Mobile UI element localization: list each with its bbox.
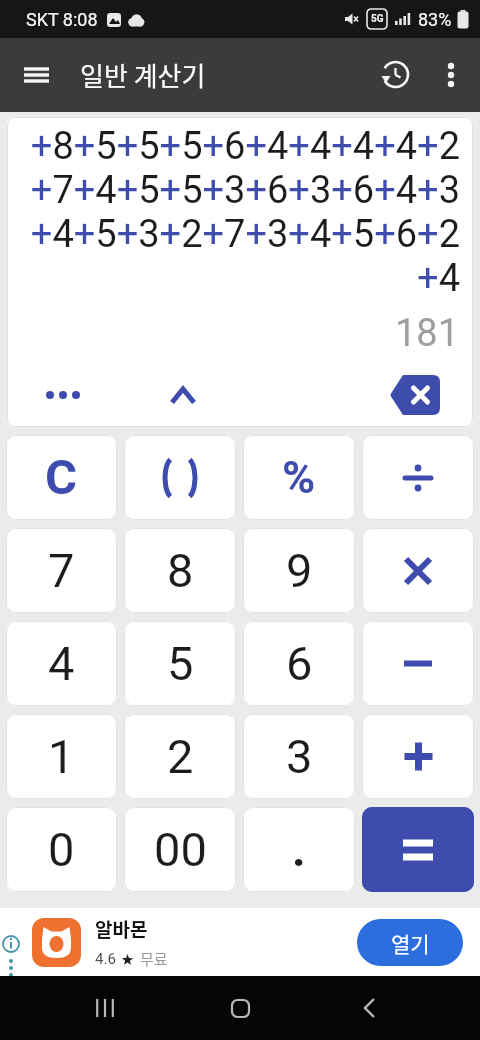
button[interactable] [39, 375, 87, 415]
staticText: 8 [167, 543, 194, 598]
staticText: +7+4+5+5+3+6+3+6+4+3 [30, 168, 460, 212]
button[interactable] [390, 375, 440, 415]
staticText: 7 [48, 543, 75, 598]
staticText: 열기 [391, 928, 430, 958]
button[interactable]: 8 [124, 528, 236, 613]
button[interactable]: 0 [6, 807, 117, 892]
button[interactable] [372, 52, 418, 98]
staticText: 무료 [140, 948, 168, 970]
button[interactable] [82, 985, 128, 1031]
button[interactable] [124, 435, 236, 520]
button[interactable]: % [243, 435, 355, 520]
staticText: +8+5+5+5+6+4+4+4+4+2 [30, 124, 460, 168]
staticText: 5 [167, 636, 194, 691]
button[interactable]: 2 [124, 714, 236, 799]
button[interactable]: 9 [243, 528, 355, 613]
staticText: 00 [154, 822, 207, 877]
staticText: 3 [286, 729, 313, 784]
button[interactable]: 7 [6, 528, 117, 613]
button[interactable] [346, 985, 392, 1031]
staticText: +4+5+3+2+7+3+4+5+6+2 [30, 212, 460, 256]
staticText: +4 [417, 256, 460, 300]
button[interactable] [362, 714, 474, 799]
button[interactable] [217, 985, 263, 1031]
staticText: 4.6 [95, 950, 116, 968]
staticText: 일반 계산기 [80, 56, 206, 94]
staticText: 83% [418, 9, 452, 30]
button[interactable] [430, 54, 472, 96]
staticText: 6 [286, 636, 313, 691]
button[interactable]: 00 [124, 807, 236, 892]
button[interactable]: 5 [124, 621, 236, 706]
button[interactable] [362, 621, 474, 706]
button[interactable]: 4 [6, 621, 117, 706]
staticText: % [282, 451, 316, 504]
button[interactable] [159, 375, 207, 415]
button[interactable]: . [243, 807, 355, 892]
staticText: 알바몬 [95, 915, 148, 943]
button[interactable]: C [6, 435, 117, 520]
staticText: 4 [48, 636, 75, 691]
button[interactable]: 열기 [357, 919, 463, 966]
staticText: 1 [48, 729, 75, 784]
button[interactable] [14, 52, 60, 98]
button[interactable] [362, 528, 474, 613]
button[interactable]: 1 [6, 714, 117, 799]
staticText: . [292, 822, 306, 877]
staticText: 2 [167, 729, 194, 784]
button[interactable]: 6 [243, 621, 355, 706]
staticText: 181 [395, 311, 460, 356]
staticText: SKT 8:08 [26, 9, 98, 30]
staticText: C [45, 449, 78, 506]
staticText: 0 [48, 822, 75, 877]
button[interactable] [362, 435, 474, 520]
staticText: 9 [286, 543, 313, 598]
staticText: 5G [371, 13, 384, 25]
button[interactable]: 3 [243, 714, 355, 799]
button[interactable] [362, 807, 474, 892]
